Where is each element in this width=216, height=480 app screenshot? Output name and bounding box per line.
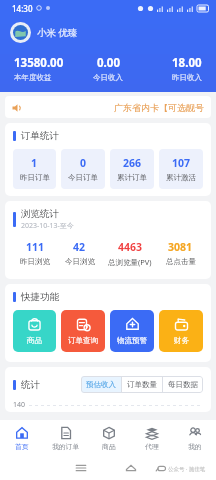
staticText: 昨日浏览 [20,257,50,266]
staticText: 商品 [27,336,42,345]
staticText: 42 [73,240,86,254]
button[interactable]: 每日数据 [163,376,203,393]
button[interactable]: 107 [159,149,203,189]
staticText: 商品 [102,442,116,451]
button[interactable]: Announcement [5,96,211,118]
button[interactable]: 1 [13,149,56,189]
button[interactable]: Recents [56,456,106,480]
button[interactable]: 42 [57,240,102,266]
staticText: 统计 [21,379,40,391]
button[interactable]: Back [156,456,206,480]
button[interactable]: 0 [61,149,105,189]
button[interactable]: 预估收入 [81,376,121,393]
staticText: 今日收入 [93,73,123,82]
staticText: 1 [31,156,38,170]
staticText: 3081 [168,240,193,254]
staticText: 订单数量 [127,380,157,389]
button[interactable]: 代理 [130,420,173,456]
staticText: 首页 [15,442,29,451]
staticText: 昨日订单 [20,173,50,182]
staticText: 财务 [174,336,189,345]
staticText: 本年度收益 [14,73,52,82]
button[interactable]: 订单数量 [122,376,162,393]
staticText: 2023-10-13-至今 [21,221,74,231]
button[interactable]: 4463 [102,240,158,267]
staticText: 总点击量 [166,257,196,266]
button[interactable]: 3081 [158,240,203,266]
staticText: 14:30 [12,3,33,14]
staticText: 140 [13,400,26,410]
button[interactable]: 111 [13,240,57,266]
staticText: 小米 优臻 [37,26,78,39]
staticText: 0 [80,156,87,170]
staticText: 今日浏览 [65,257,95,266]
staticText: 今日订单 [68,173,98,182]
button[interactable]: Profile avatar [10,22,31,43]
staticText: 总浏览量(PV) [108,257,152,267]
staticText: 快捷功能 [21,291,59,303]
staticText: 111 [26,240,45,254]
staticText: 4463 [118,240,143,254]
other: Announcement [12,103,22,113]
staticText: 订单查询 [68,336,98,345]
staticText: 0.00 [97,55,120,71]
staticText: 13580.00 [14,55,64,71]
staticText: 广东省内卡【可选靓号 [114,102,204,113]
staticText: 公众号 · 施佳笔记 [168,465,206,473]
staticText: 18.00 [172,55,202,71]
button[interactable]: 物流预警 [110,310,154,352]
staticText: 物流预警 [117,336,147,345]
button[interactable]: Home [106,456,156,480]
staticText: 订单统计 [21,130,59,142]
staticText: 代理 [145,442,159,451]
staticText: 107 [172,156,191,170]
staticText: 我的 [188,442,202,451]
button[interactable]: 商品 [87,420,130,456]
staticText: 累计激活 [166,173,196,182]
staticText: 每日数据 [168,380,198,389]
button[interactable]: 我的订单 [44,420,87,456]
staticText: 累计订单 [117,173,147,182]
staticText: 266 [123,156,142,170]
button[interactable]: 商品 [13,310,56,352]
staticText: 预估收入 [86,380,116,389]
button[interactable]: 订单查询 [61,310,105,352]
button[interactable]: 财务 [159,310,203,352]
staticText: 浏览统计 [21,208,59,220]
staticText: 昨日收入 [172,73,202,82]
button[interactable]: 首页 [0,420,44,456]
button[interactable]: 我的 [173,420,216,456]
staticText: 我的订单 [52,442,80,451]
button[interactable]: 266 [110,149,154,189]
